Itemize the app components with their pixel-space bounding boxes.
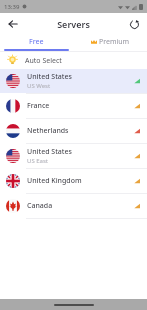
button[interactable]: Refresh (125, 15, 143, 33)
button[interactable]: Premium (73, 34, 147, 49)
button[interactable]: France (0, 94, 147, 118)
staticText: United States (27, 72, 72, 82)
button[interactable]: United Kingdom (0, 169, 147, 193)
button[interactable]: United States (0, 144, 147, 168)
staticText: Netherlands (27, 126, 69, 136)
button[interactable]: Netherlands (0, 119, 147, 143)
staticText: US East (27, 157, 48, 165)
staticText: United States (27, 147, 72, 157)
staticText: US West (27, 82, 51, 90)
button[interactable]: Free (0, 34, 73, 49)
button[interactable]: Canada (0, 194, 147, 218)
button[interactable]: Back (4, 15, 22, 33)
staticText: Premium (99, 37, 130, 47)
staticText: Canada (27, 201, 53, 211)
staticText: France (27, 101, 50, 111)
button[interactable]: United States (0, 69, 147, 93)
staticText: 13:39 (4, 3, 20, 11)
button[interactable]: Auto Select (0, 52, 147, 69)
staticText: Servers (57, 18, 90, 30)
staticText: Free (29, 37, 44, 47)
staticText: Auto Select (25, 56, 62, 66)
staticText: United Kingdom (27, 176, 82, 186)
